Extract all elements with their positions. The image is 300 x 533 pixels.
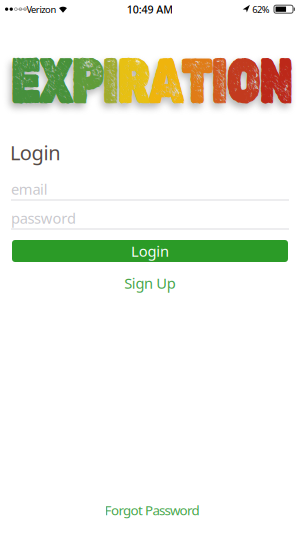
staticText: R: [118, 54, 151, 108]
staticText: I: [104, 55, 121, 108]
button[interactable]: password: [11, 207, 289, 229]
staticText: T: [181, 54, 212, 108]
staticText: O: [225, 54, 259, 107]
staticText: P: [74, 55, 106, 108]
staticText: A: [150, 55, 184, 108]
staticText: A: [149, 54, 183, 107]
staticText: E: [13, 54, 43, 108]
staticText: O: [225, 54, 259, 108]
staticText: E: [14, 55, 44, 108]
staticText: Forgot Password: [104, 501, 199, 519]
staticText: Login: [131, 241, 169, 261]
staticText: 10:49 AM: [127, 2, 173, 16]
button[interactable]: Sign Up: [124, 273, 176, 293]
staticText: I: [103, 54, 120, 107]
staticText: Verizon: [26, 3, 57, 15]
staticText: I: [210, 54, 227, 107]
staticText: P: [73, 54, 105, 107]
staticText: email: [11, 179, 48, 199]
staticText: Sign Up: [124, 273, 176, 293]
staticText: I: [103, 54, 120, 108]
button[interactable]: Forgot Password: [104, 501, 199, 519]
staticText: T: [182, 55, 213, 108]
staticText: password: [11, 208, 76, 228]
staticText: T: [181, 54, 212, 107]
staticText: P: [73, 54, 105, 108]
staticText: Login: [10, 139, 60, 166]
staticText: X: [41, 54, 75, 108]
staticText: R: [119, 55, 152, 108]
staticText: 62%: [252, 3, 270, 15]
staticText: E: [13, 54, 43, 107]
button[interactable]: email: [11, 178, 289, 200]
button[interactable]: Login: [12, 240, 288, 262]
staticText: A: [149, 54, 183, 108]
staticText: I: [211, 55, 228, 108]
staticText: X: [41, 54, 75, 107]
staticText: N: [258, 55, 292, 108]
staticText: N: [257, 54, 291, 108]
staticText: X: [42, 55, 76, 108]
staticText: N: [257, 54, 291, 107]
staticText: R: [118, 54, 151, 107]
staticText: I: [210, 54, 227, 108]
staticText: O: [226, 55, 260, 108]
